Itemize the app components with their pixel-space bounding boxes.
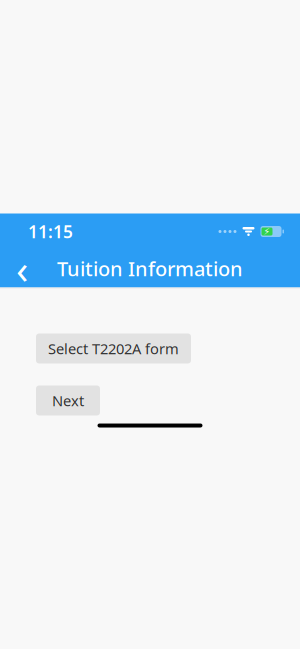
button[interactable]: Back: [0, 249, 44, 287]
staticText: Tuition Information: [57, 255, 243, 282]
button[interactable]: Next: [36, 385, 100, 415]
staticText: Next: [52, 391, 84, 410]
staticText: 11:15: [28, 220, 73, 243]
button[interactable]: Select T2202A form: [36, 333, 191, 363]
staticText: ⚡︎: [263, 226, 270, 237]
staticText: Select T2202A form: [48, 339, 179, 358]
staticText: ‹: [16, 242, 28, 295]
